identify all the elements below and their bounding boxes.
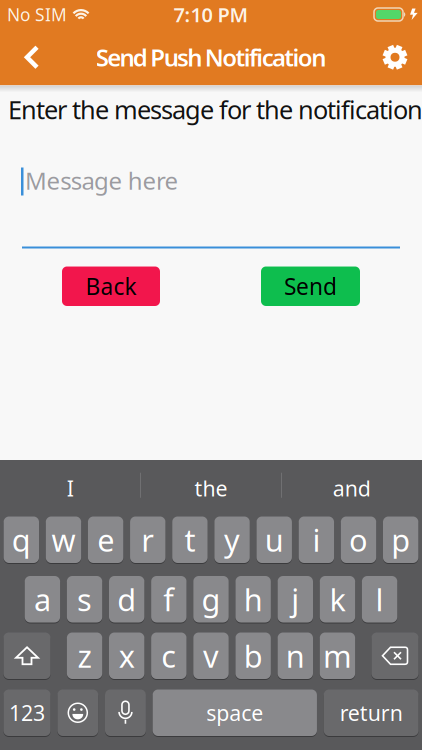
button[interactable] — [381, 29, 422, 85]
staticText: b — [244, 635, 263, 676]
button[interactable]: u — [256, 516, 292, 563]
staticText: p — [391, 519, 410, 560]
button[interactable]: Send — [261, 266, 360, 306]
button[interactable]: and — [282, 460, 422, 516]
button[interactable]: space — [153, 689, 317, 736]
staticText: I — [67, 474, 74, 502]
button[interactable]: q — [4, 516, 39, 563]
staticText: Enter the message for the notification — [8, 92, 422, 126]
button[interactable]: h — [235, 576, 271, 622]
button[interactable]: p — [383, 516, 418, 563]
staticText: u — [265, 519, 284, 560]
staticText: a — [34, 579, 51, 620]
button[interactable]: w — [46, 516, 81, 563]
button[interactable]: d — [109, 576, 144, 622]
button[interactable]: f — [151, 576, 187, 622]
button[interactable]: m — [320, 632, 355, 679]
staticText: the — [194, 474, 227, 502]
button[interactable]: o — [341, 516, 376, 563]
button[interactable]: v — [193, 632, 229, 679]
button[interactable]: r — [130, 516, 165, 563]
button[interactable]: k — [320, 576, 355, 622]
button[interactable]: a — [25, 576, 60, 622]
staticText: Send Push Notification — [96, 41, 326, 73]
staticText: d — [117, 579, 136, 620]
staticText: x — [119, 635, 135, 676]
button[interactable]: n — [278, 632, 313, 679]
staticText: Message here — [25, 164, 179, 196]
button[interactable]: I — [0, 460, 140, 516]
staticText: f — [163, 579, 174, 620]
staticText: Send — [284, 271, 337, 301]
staticText: r — [141, 519, 154, 560]
button[interactable]: i — [299, 516, 334, 563]
staticText: i — [312, 519, 320, 560]
button[interactable]: j — [278, 576, 313, 622]
staticText: o — [349, 519, 368, 560]
button[interactable]: z — [67, 632, 102, 679]
button[interactable]: the — [141, 460, 281, 516]
staticText: z — [78, 635, 92, 676]
staticText: w — [51, 519, 75, 560]
staticText: l — [376, 579, 384, 620]
button[interactable]: return — [324, 689, 419, 736]
staticText: s — [77, 579, 92, 620]
button[interactable] — [105, 689, 146, 736]
staticText: and — [333, 474, 371, 502]
button[interactable] — [0, 29, 40, 85]
staticText: g — [201, 579, 220, 620]
button[interactable]: b — [235, 632, 271, 679]
staticText: 7:10 PM — [173, 1, 248, 28]
staticText: Back — [85, 271, 136, 301]
staticText: h — [244, 579, 263, 620]
button[interactable]: l — [362, 576, 397, 622]
button[interactable] — [21, 253, 400, 335]
button[interactable]: e — [88, 516, 123, 563]
staticText: y — [224, 519, 240, 560]
button[interactable] — [3, 632, 51, 679]
staticText: c — [161, 635, 176, 676]
button[interactable]: c — [151, 632, 187, 679]
button[interactable]: x — [109, 632, 144, 679]
button[interactable]: s — [67, 576, 102, 622]
staticText: m — [323, 635, 352, 676]
button[interactable]: g — [193, 576, 229, 622]
staticText: v — [203, 635, 219, 676]
staticText: No SIM — [7, 3, 67, 26]
button[interactable] — [371, 632, 419, 679]
button[interactable]: 123 — [3, 689, 51, 736]
staticText: j — [291, 579, 299, 620]
staticText: 123 — [9, 699, 45, 727]
button[interactable] — [57, 689, 98, 736]
staticText: space — [206, 699, 263, 727]
staticText: k — [329, 579, 345, 620]
button[interactable]: y — [214, 516, 250, 563]
staticText: q — [12, 519, 31, 560]
button[interactable]: t — [172, 516, 208, 563]
staticText: n — [286, 635, 305, 676]
staticText: return — [340, 699, 403, 727]
staticText: e — [97, 519, 114, 560]
staticText: t — [184, 519, 195, 560]
button[interactable]: Back — [62, 266, 160, 306]
